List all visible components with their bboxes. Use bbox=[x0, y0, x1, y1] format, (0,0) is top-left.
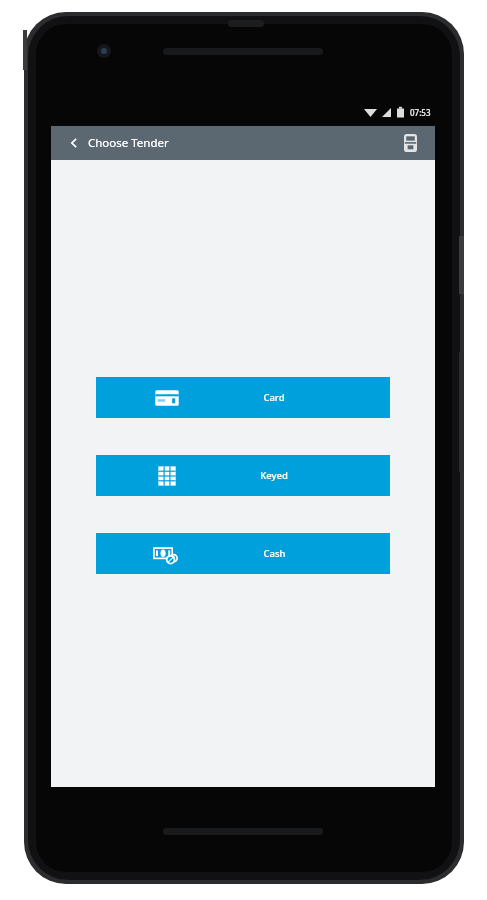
button[interactable]: Card reader device bbox=[397, 130, 423, 156]
button[interactable]: Card bbox=[96, 377, 390, 418]
staticText: 07:53 bbox=[410, 107, 431, 118]
staticText: Choose Tender bbox=[88, 135, 169, 151]
button[interactable]: Keyed bbox=[96, 455, 390, 496]
staticText: Card bbox=[263, 391, 285, 404]
staticText: Keyed bbox=[260, 469, 288, 482]
staticText: Cash bbox=[263, 547, 286, 560]
button[interactable]: Cash bbox=[96, 533, 390, 574]
button[interactable]: Back bbox=[64, 133, 84, 153]
